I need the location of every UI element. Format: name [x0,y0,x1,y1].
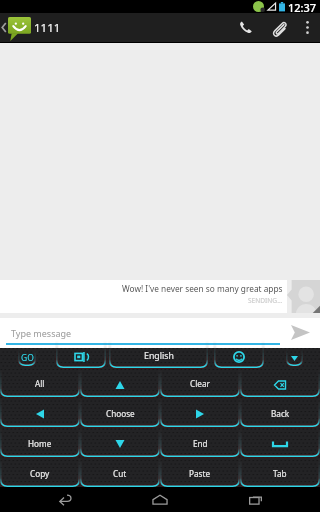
button[interactable]: Call [229,13,262,42]
button[interactable]: End [160,427,240,457]
staticText: Wow! I've never seen so many great apps [122,283,283,294]
button[interactable] [0,280,287,313]
button[interactable]: Back [35,487,95,512]
button[interactable]: More options [295,13,320,42]
button[interactable]: Tab [240,457,320,487]
staticText: Copy [30,468,50,479]
staticText: Clear [190,378,210,389]
button[interactable]: Copy [0,457,80,487]
button[interactable] [214,348,264,368]
button[interactable]: Navigate up [0,13,32,42]
staticText: GO [21,352,34,364]
button[interactable]: English [109,348,208,368]
staticText: Type message [11,327,72,339]
staticText: English [144,350,174,362]
button[interactable] [80,368,160,397]
staticText: 12:37 [288,0,317,13]
staticText: Back [271,408,290,419]
button[interactable]: Home [130,487,190,512]
staticText: 1111 [34,20,61,36]
staticText: Paste [189,468,211,479]
staticText: Tab [273,468,287,479]
button[interactable]: GO [18,351,36,366]
button[interactable]: All [0,368,80,397]
staticText: End [193,438,208,449]
button[interactable]: Paste [160,457,240,487]
staticText: All [35,378,45,389]
button[interactable] [240,427,320,457]
button[interactable] [0,397,80,427]
button[interactable]: Home [0,427,80,457]
button[interactable]: Back [240,397,320,427]
button[interactable]: Send [280,318,320,348]
staticText: Home [28,438,52,449]
staticText: Cut [113,468,127,479]
button[interactable] [240,368,320,397]
button[interactable]: Clear [160,368,240,397]
button[interactable]: Choose [80,397,160,427]
staticText: SENDING… [248,296,283,305]
button[interactable] [286,351,303,366]
staticText: Choose [106,408,135,419]
button[interactable] [80,427,160,457]
button[interactable]: Recent apps [225,487,285,512]
button[interactable] [160,397,240,427]
button[interactable]: Attach [262,13,295,42]
button[interactable]: Cut [80,457,160,487]
button[interactable] [56,348,106,368]
